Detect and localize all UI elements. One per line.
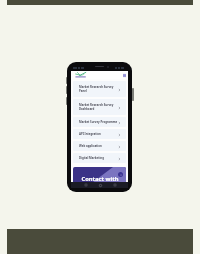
- staticText: Web application: [79, 144, 118, 148]
- button[interactable]: API Integration: [73, 129, 126, 139]
- button[interactable]: Digital Marketing: [73, 153, 126, 163]
- staticText: Market Survey Programme: [79, 120, 118, 124]
- button[interactable]: Web application: [73, 141, 126, 151]
- button[interactable]: Contact with: [73, 167, 126, 182]
- button[interactable]: Market Research Survey Dashboard: [73, 99, 126, 115]
- staticText: API Integration: [79, 132, 118, 136]
- staticText: Digital Marketing: [79, 156, 118, 160]
- button[interactable]: Market Survey Programme: [73, 117, 126, 127]
- button[interactable]: Home: [99, 184, 102, 187]
- staticText: Market Research Survey Panel: [79, 85, 118, 93]
- button[interactable]: Open navigation menu: [122, 73, 126, 77]
- staticText: Market Research Survey Dashboard: [79, 103, 118, 111]
- button[interactable]: Market Research Survey Panel: [73, 81, 126, 97]
- staticText: Contact with: [81, 175, 119, 182]
